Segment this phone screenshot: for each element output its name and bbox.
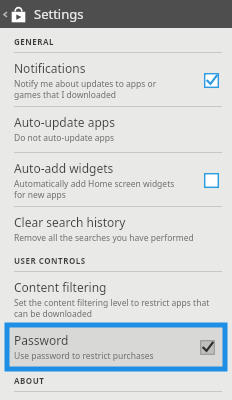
button[interactable]: Back [0, 0, 10, 28]
staticText: Password [14, 332, 69, 348]
staticText: Set the content filtering level to restr… [14, 297, 210, 319]
staticText: Do not auto-update apps [14, 132, 115, 144]
staticText: USER CONTROLS [14, 255, 86, 266]
staticText: Auto-add widgets [14, 160, 114, 176]
staticText: Clear search history [14, 214, 126, 230]
staticText: GENERAL [14, 36, 55, 47]
staticText: Remove all the searches you have perform… [14, 232, 194, 244]
button[interactable]: Auto-update apps [0, 107, 232, 152]
staticText: Content filtering [14, 279, 107, 295]
button[interactable]: Auto-add widgets [0, 153, 232, 206]
staticText: Automatically add Home screen widgets fo… [14, 178, 175, 200]
button[interactable]: Google Play [10, 6, 27, 23]
staticText: Settings [34, 5, 84, 23]
button[interactable]: Content filtering [0, 272, 232, 323]
staticText: Use password to restrict purchases [14, 350, 154, 362]
button[interactable]: Notifications [0, 53, 232, 106]
staticText: Notify me about updates to apps or games… [14, 78, 157, 100]
staticText: Notifications [14, 60, 86, 76]
button[interactable]: Password [7, 325, 225, 369]
button[interactable]: Clear search history [0, 207, 232, 250]
staticText: ABOUT [14, 375, 45, 386]
staticText: Auto-update apps [14, 114, 115, 130]
